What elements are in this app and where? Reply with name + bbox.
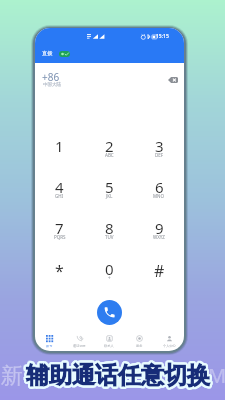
staticText: PQRS: [54, 234, 66, 240]
staticText: 辅助通话任意切换: [25, 363, 209, 392]
staticText: 辅助通话任意切换: [26, 361, 210, 390]
staticText: 新: [1, 362, 23, 390]
staticText: DEF: [155, 152, 164, 158]
button[interactable]: 6: [134, 176, 184, 200]
staticText: 辅助通话任意切换: [25, 361, 209, 390]
staticText: JKL: [106, 193, 113, 199]
staticText: 辅助通话任意切换: [27, 361, 211, 390]
button[interactable]: *: [35, 258, 84, 282]
staticText: #: [154, 260, 165, 282]
staticText: TUV: [105, 234, 114, 240]
button[interactable]: 直拨: [42, 50, 70, 57]
staticText: ABC: [105, 152, 114, 158]
staticText: 5: [105, 177, 114, 197]
button[interactable]: 个人中心: [154, 333, 184, 350]
staticText: 4: [55, 177, 64, 197]
staticText: 通话记录: [73, 344, 86, 348]
button[interactable]: 通话记录: [64, 333, 94, 350]
button[interactable]: #: [134, 258, 184, 282]
staticText: 辅助通话任意切换: [27, 362, 211, 391]
staticText: 6: [155, 177, 164, 197]
button[interactable]: Backspace: [165, 72, 181, 88]
button[interactable]: 4: [35, 176, 84, 200]
staticText: 辅助通话任意切换: [27, 359, 211, 388]
button[interactable]: 服务: [124, 333, 154, 350]
button[interactable]: 7: [35, 217, 84, 241]
staticText: 辅助通话任意切换: [26, 360, 210, 389]
staticText: WXYZ: [153, 234, 165, 240]
staticText: +86: [42, 70, 60, 84]
button[interactable]: 5: [84, 176, 134, 200]
button[interactable]: 1: [35, 135, 84, 159]
button[interactable]: 联系人: [94, 333, 124, 350]
staticText: 个人中心: [163, 344, 176, 348]
staticText: 2: [105, 136, 114, 156]
staticText: 3: [155, 136, 164, 156]
staticText: 中国大陆: [43, 82, 61, 88]
staticText: 辅助通话任意切换: [28, 361, 212, 390]
staticText: 辅助通话任意切换: [26, 359, 210, 388]
staticText: 0: [105, 259, 114, 279]
button[interactable]: 0: [84, 258, 134, 282]
staticText: 辅助通话任意切换: [27, 360, 211, 389]
button[interactable]: 8: [84, 217, 134, 241]
staticText: 辅助通话任意切换: [26, 362, 210, 391]
staticText: 辅助通话任意切换: [25, 359, 209, 388]
staticText: 联系人: [104, 344, 114, 348]
staticText: 辅助通话任意切换: [28, 362, 212, 391]
staticText: 辅助通话任意切换: [24, 361, 208, 390]
staticText: 辅助通话任意切换: [25, 360, 209, 389]
staticText: 服务: [136, 344, 143, 348]
button[interactable]: 2: [84, 135, 134, 159]
staticText: 辅助通话任意切换: [27, 363, 211, 392]
button[interactable]: 3: [134, 135, 184, 159]
staticText: +: [108, 275, 111, 281]
staticText: 15:15: [156, 33, 169, 40]
staticText: 辅助通话任意切换: [24, 362, 208, 391]
staticText: 辅助通话任意切换: [24, 360, 208, 389]
button[interactable]: 拨号: [35, 333, 64, 350]
staticText: 辅助通话任意切换: [28, 360, 212, 389]
staticText: 辅助通话任意切换: [25, 362, 209, 391]
staticText: 9: [155, 218, 164, 238]
staticText: 8: [105, 218, 114, 238]
staticText: *: [55, 260, 64, 282]
staticText: 直拨: [42, 50, 53, 57]
staticText: 7: [55, 218, 64, 238]
staticText: GHI: [55, 193, 64, 199]
staticText: 辅助通话任意切换: [26, 363, 210, 392]
staticText: 1: [55, 136, 64, 156]
staticText: MNO: [153, 193, 165, 199]
staticText: M: [208, 362, 225, 389]
button[interactable]: Call: [97, 300, 122, 325]
button[interactable]: 9: [134, 217, 184, 241]
staticText: 拨号: [46, 344, 53, 348]
